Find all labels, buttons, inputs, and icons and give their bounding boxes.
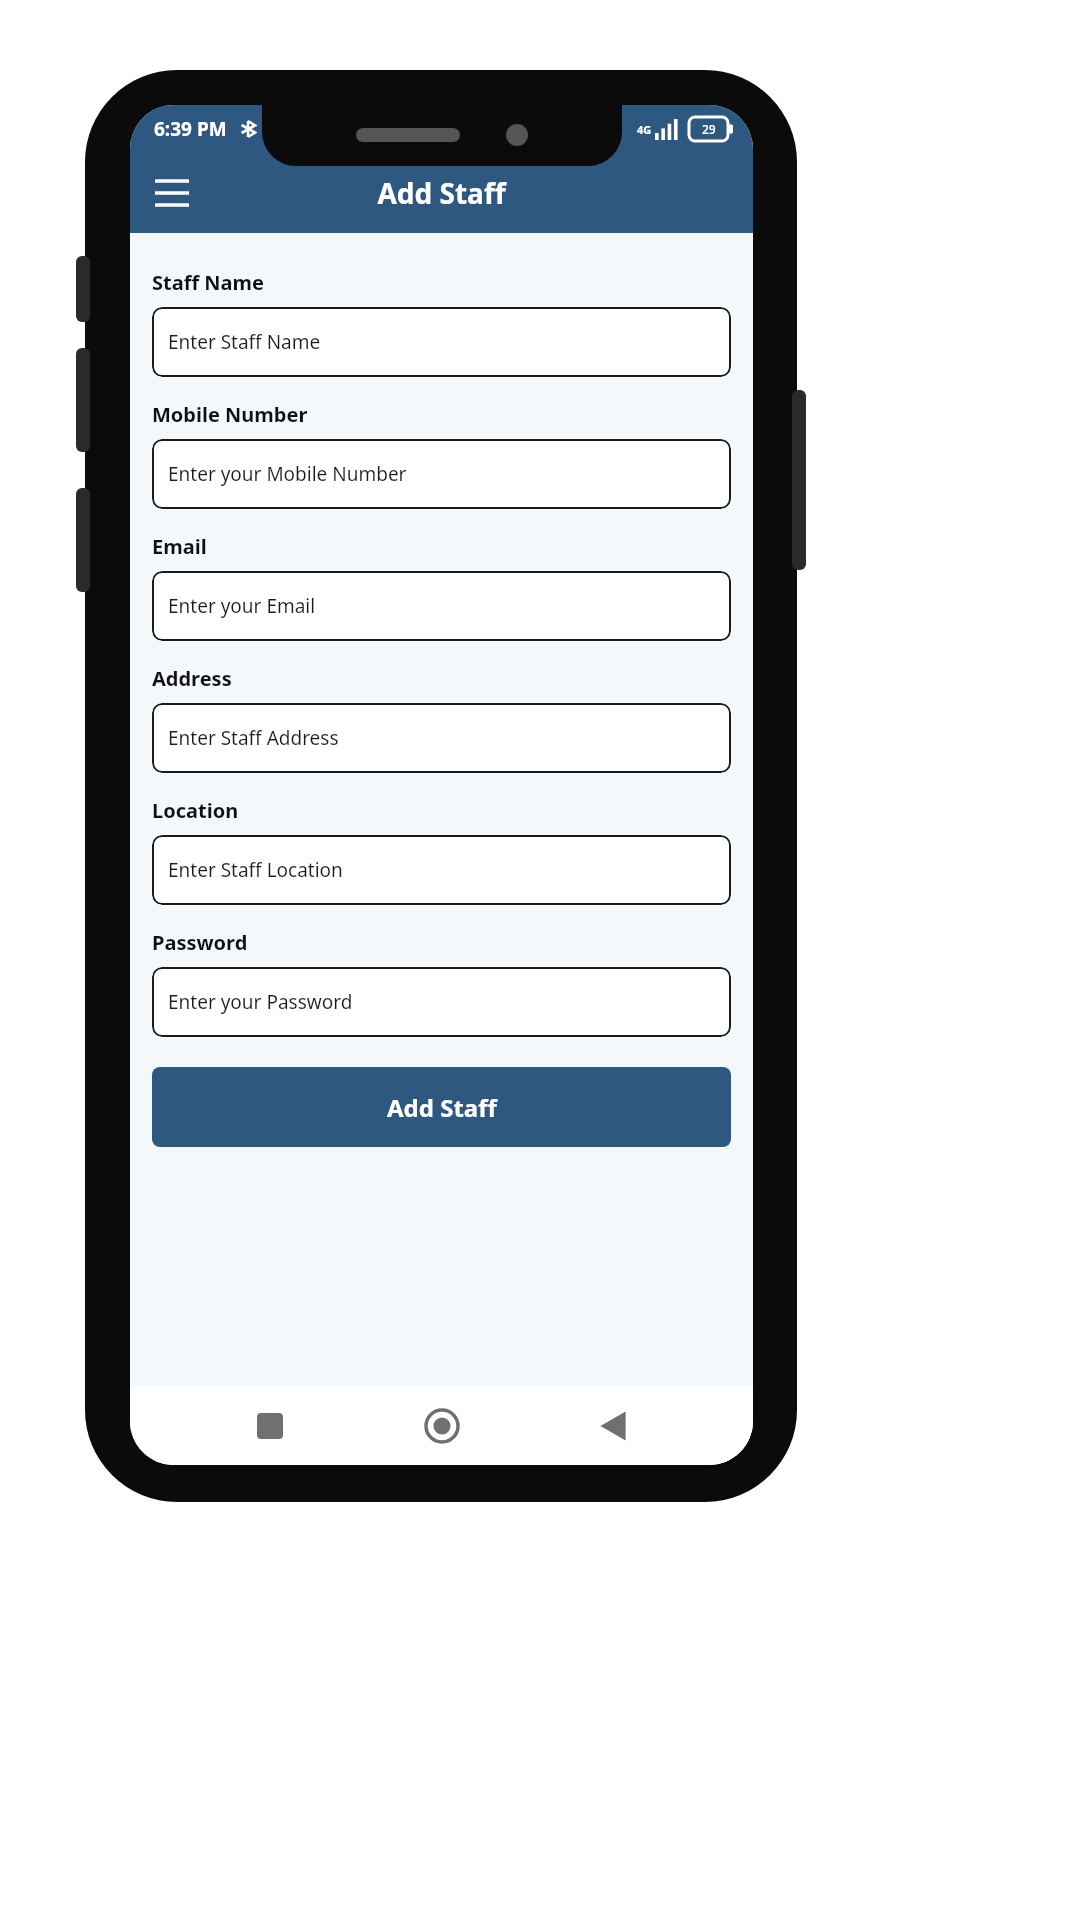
button[interactable]: Enter your Mobile Number (152, 439, 731, 509)
staticText: Add Staff (377, 174, 506, 212)
staticText: 4G (637, 122, 652, 137)
button[interactable]: Back (581, 1394, 645, 1458)
staticText: Enter your Email (168, 593, 316, 619)
staticText: Mobile Number (152, 401, 308, 428)
staticText: 6:39 PM (154, 116, 227, 142)
button[interactable]: Enter Staff Location (152, 835, 731, 905)
button[interactable]: Recents (238, 1394, 302, 1458)
button[interactable]: Menu (144, 165, 200, 221)
staticText: Enter Staff Address (168, 725, 339, 751)
staticText: Enter Staff Location (168, 857, 343, 883)
staticText: 29 (702, 121, 716, 137)
staticText: Enter your Password (168, 989, 353, 1015)
staticText: Staff Name (152, 269, 264, 296)
staticText: Enter Staff Name (168, 329, 321, 355)
staticText: Email (152, 533, 207, 560)
staticText: Location (152, 797, 239, 824)
button[interactable]: Enter your Email (152, 571, 731, 641)
button[interactable]: Enter Staff Address (152, 703, 731, 773)
button[interactable]: Add Staff (152, 1067, 731, 1147)
button[interactable]: Enter your Password (152, 967, 731, 1037)
button[interactable]: Enter Staff Name (152, 307, 731, 377)
button[interactable]: Home (410, 1394, 474, 1458)
staticText: Enter your Mobile Number (168, 461, 407, 487)
staticText: Address (152, 665, 232, 692)
staticText: Password (152, 929, 248, 956)
staticText: Add Staff (387, 1091, 497, 1124)
